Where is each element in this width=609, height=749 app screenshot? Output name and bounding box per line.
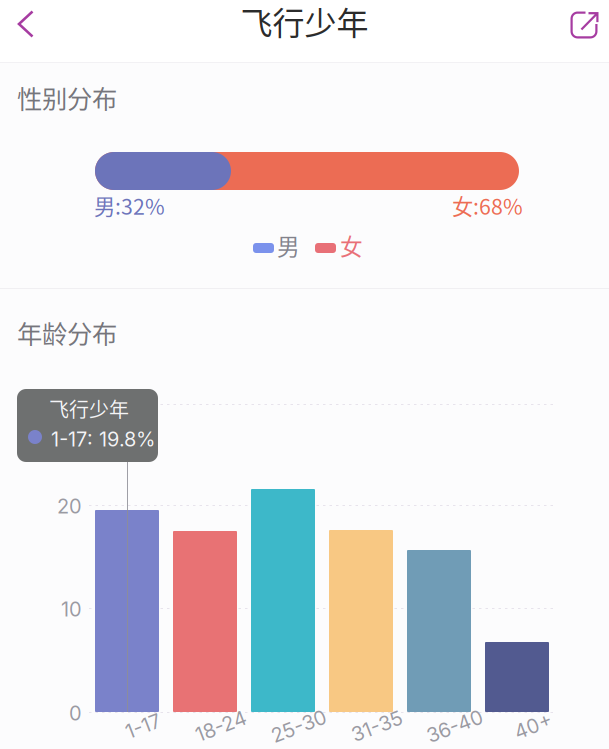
- staticText: 女:68%: [452, 190, 523, 221]
- staticText: 40+: [513, 714, 552, 738]
- staticText: 10: [61, 597, 82, 621]
- staticText: 飞行少年: [49, 394, 129, 423]
- staticText: 31-35: [350, 714, 403, 738]
- staticText: 1-17: 19.8%: [51, 427, 155, 451]
- staticText: 1-17: [125, 714, 161, 738]
- staticText: 飞行少年: [240, 0, 368, 44]
- button[interactable]: Back: [0, 0, 48, 62]
- staticText: 男: [277, 229, 300, 262]
- staticText: 36-40: [425, 714, 484, 738]
- staticText: 0: [69, 701, 82, 725]
- staticText: 年龄分布: [17, 314, 117, 351]
- staticText: 20: [57, 494, 82, 518]
- staticText: 25-30: [270, 714, 328, 738]
- staticText: 女: [340, 229, 363, 262]
- staticText: 男:32%: [94, 190, 165, 221]
- staticText: 性别分布: [17, 79, 117, 116]
- button[interactable]: Share: [559, 0, 607, 62]
- staticText: 18-24: [194, 714, 247, 738]
